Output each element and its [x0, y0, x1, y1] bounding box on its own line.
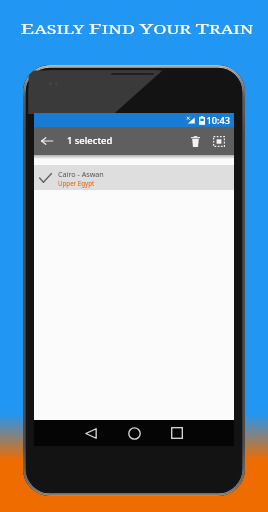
button[interactable]: Back — [34, 127, 60, 155]
button[interactable]: Back — [81, 420, 101, 446]
button[interactable]: Cairo - Aswan — [34, 165, 234, 190]
button[interactable]: Recents — [167, 420, 187, 446]
staticText: 10:43 — [206, 115, 230, 126]
staticText: EASILY FIND YOUR TRAIN — [20, 18, 254, 38]
staticText: Cairo - Aswan — [58, 169, 104, 179]
button[interactable]: Delete — [184, 127, 207, 155]
button[interactable]: Select all — [207, 127, 231, 155]
button[interactable]: Home — [124, 420, 144, 446]
staticText: 1 selected — [67, 135, 113, 147]
staticText: Upper Egypt — [58, 179, 95, 187]
